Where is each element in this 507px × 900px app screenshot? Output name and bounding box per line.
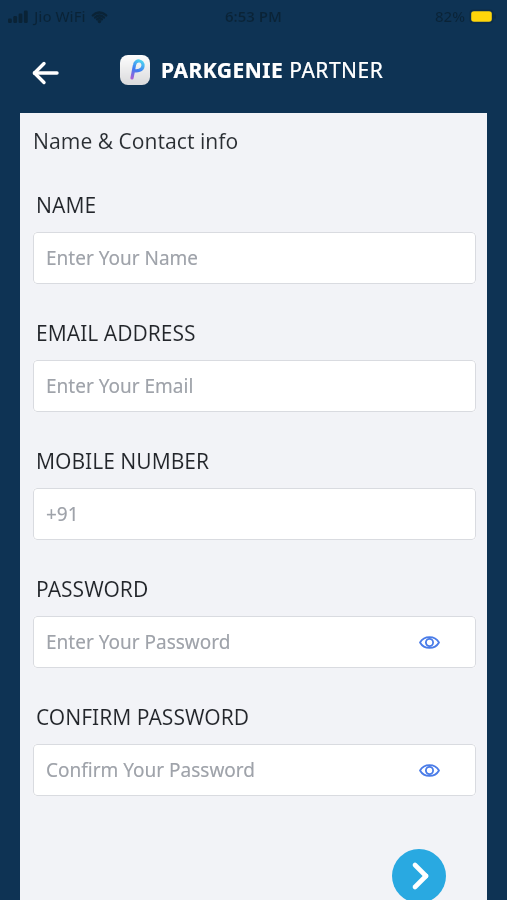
staticText: CONFIRM PASSWORD [36,703,250,732]
button[interactable]: Enter Your Name [33,232,476,284]
staticText: 6:53 PM [225,6,282,26]
staticText: NAME [36,191,97,220]
button[interactable]: Enter Your Email [33,360,476,412]
staticText: PASSWORD [36,575,149,604]
staticText: Enter Your Email [46,373,194,399]
staticText: +91 [46,501,79,527]
staticText: 82% [435,6,465,26]
button[interactable]: Confirm Your Password [33,744,476,796]
button[interactable] [392,849,446,900]
staticText: EMAIL ADDRESS [36,319,196,348]
staticText: Jio WiFi [34,6,86,26]
staticText: Confirm Your Password [46,757,256,783]
staticText: Enter Your Name [46,245,199,271]
staticText: Name & Contact info [33,127,239,156]
staticText: Enter Your Password [46,629,231,655]
button[interactable]: Enter Your Password [33,616,476,668]
button[interactable] [28,56,62,90]
staticText: MOBILE NUMBER [36,447,210,476]
button[interactable]: +91 [33,488,476,540]
staticText: PARKGENIE PARTNER [161,56,384,85]
